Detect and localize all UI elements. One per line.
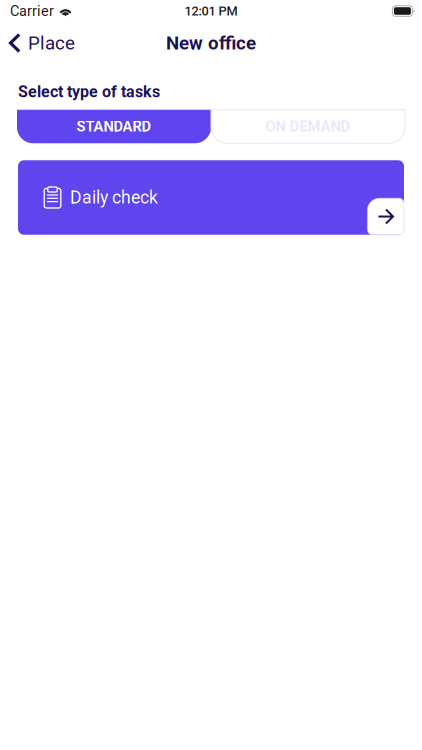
button[interactable]: ON DEMAND [211,110,405,143]
staticText: Place [28,32,75,54]
staticText: Daily check [70,187,158,208]
staticText: ON DEMAND [265,118,350,135]
button[interactable]: Open Daily check [367,198,404,235]
button[interactable]: STANDARD [17,110,211,143]
staticText: Select type of tasks [18,82,160,101]
button[interactable]: Place [0,26,75,60]
staticText: New office [166,32,256,54]
staticText: STANDARD [76,118,151,135]
staticText: Carrier [10,3,54,19]
staticText: 12:01 PM [184,3,237,18]
